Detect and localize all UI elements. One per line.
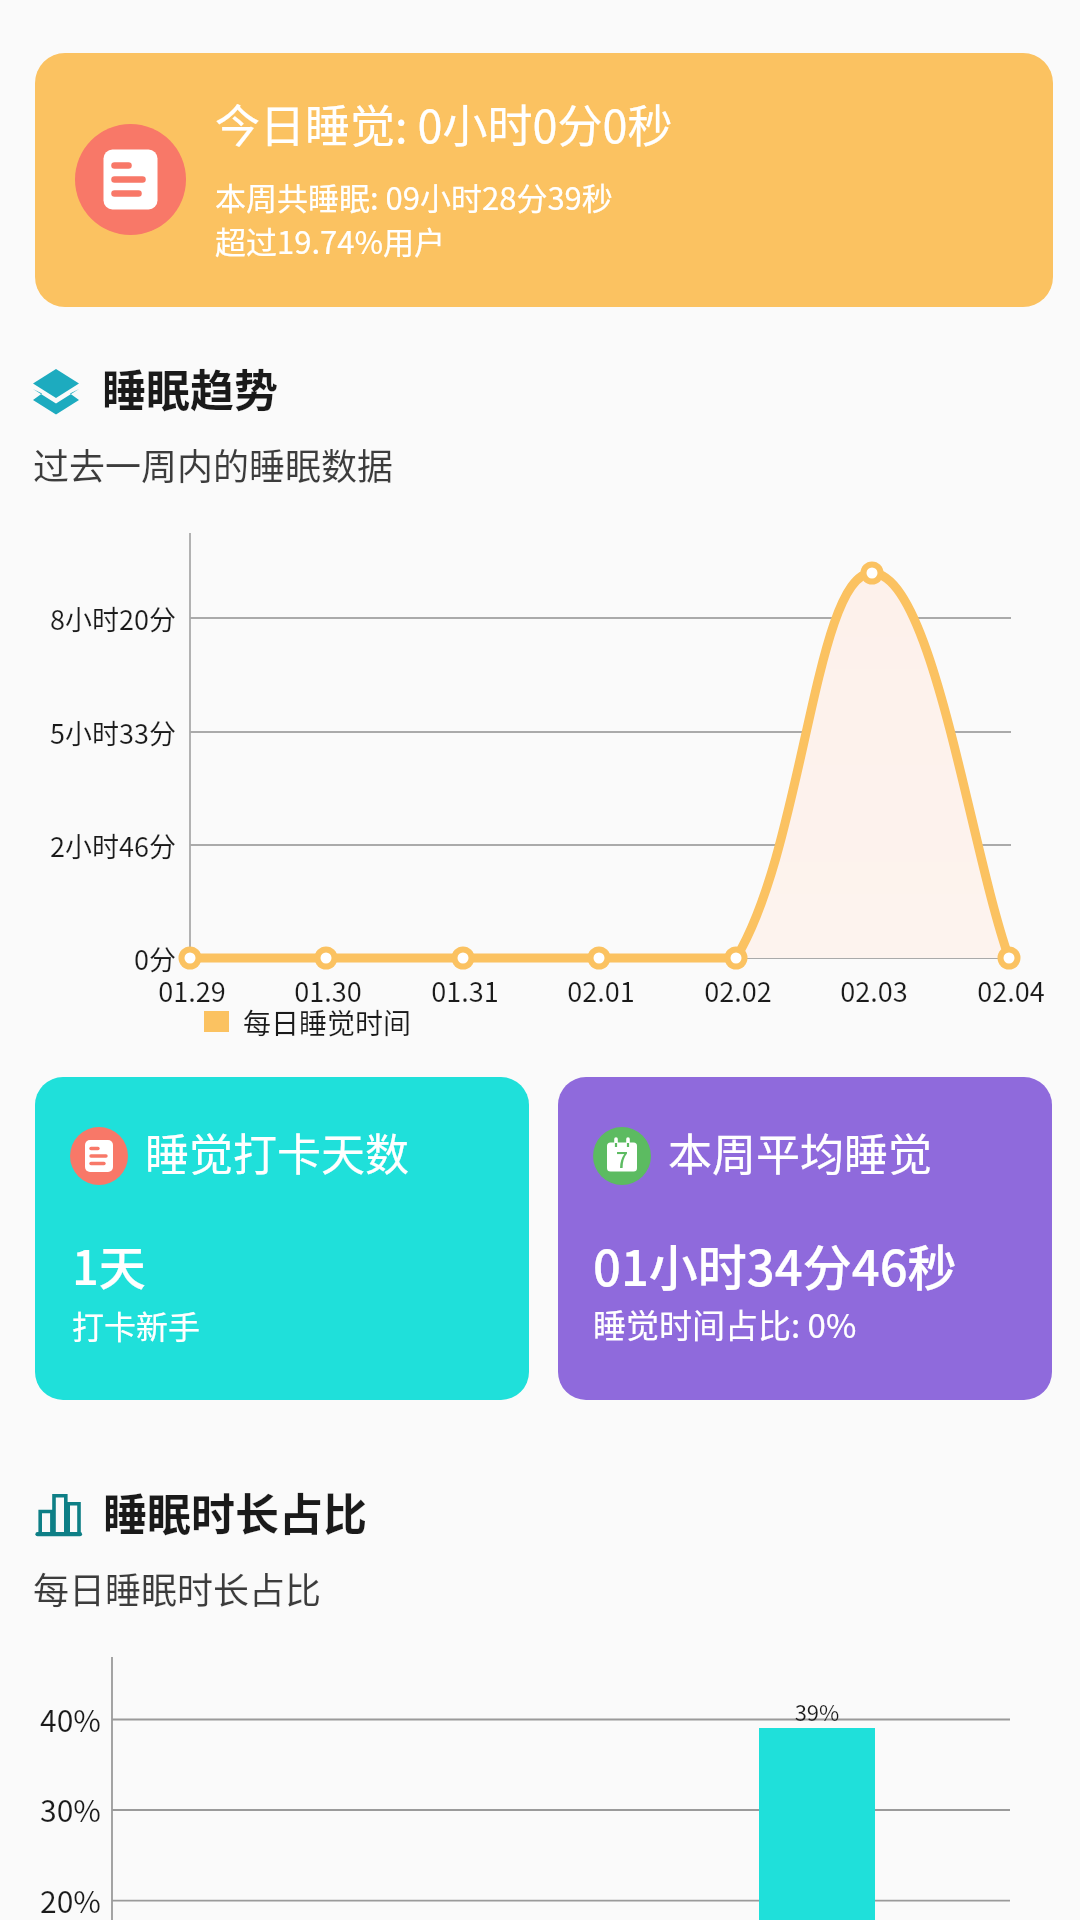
button[interactable]: 睡眠报告 bbox=[35, 53, 1053, 307]
staticText: 本周共睡眠: 09小时28分39秒 bbox=[215, 174, 613, 219]
other: 睡眠报告 bbox=[75, 124, 186, 235]
other: 本周 bbox=[593, 1127, 651, 1185]
staticText: 1天 bbox=[72, 1230, 146, 1298]
staticText: 02.04 bbox=[911, 971, 1080, 1010]
staticText: 过去一周内的睡眠数据 bbox=[33, 438, 394, 490]
other: 打卡 bbox=[70, 1127, 128, 1185]
staticText: 打卡新手 bbox=[72, 1302, 201, 1348]
button[interactable]: 本周 bbox=[558, 1077, 1052, 1400]
other: 睡眠趋势图层 bbox=[33, 369, 79, 415]
staticText: 8小时20分 bbox=[0, 599, 176, 638]
staticText: 睡觉打卡天数 bbox=[145, 1120, 409, 1184]
staticText: 7 bbox=[616, 1144, 628, 1174]
staticText: 39% bbox=[717, 1695, 917, 1727]
button[interactable]: 打卡 bbox=[35, 1077, 529, 1400]
staticText: 30% bbox=[0, 1787, 101, 1830]
staticText: 0分 bbox=[0, 939, 176, 978]
staticText: 02.01 bbox=[501, 971, 701, 1010]
other: 睡眠时长占比图表 bbox=[36, 1494, 80, 1536]
staticText: 每日睡觉时间 bbox=[243, 1002, 412, 1043]
staticText: 睡眠时长占比 bbox=[103, 1480, 367, 1544]
staticText: 2小时46分 bbox=[0, 826, 176, 865]
staticText: 02.02 bbox=[638, 971, 838, 1010]
staticText: 01.31 bbox=[365, 971, 565, 1010]
staticText: 40% bbox=[0, 1697, 101, 1740]
staticText: 20% bbox=[0, 1878, 101, 1920]
staticText: 01.29 bbox=[92, 971, 292, 1010]
staticText: 本周平均睡觉 bbox=[668, 1120, 932, 1184]
staticText: 01小时34分46秒 bbox=[593, 1229, 957, 1300]
staticText: 02.03 bbox=[774, 971, 974, 1010]
staticText: 睡觉时间占比: 0% bbox=[593, 1300, 857, 1348]
staticText: 超过19.74%用户 bbox=[215, 218, 445, 263]
staticText: 睡眠趋势 bbox=[102, 356, 278, 420]
staticText: 5小时33分 bbox=[0, 713, 176, 752]
staticText: 今日睡觉: 0小时0分0秒 bbox=[215, 91, 673, 156]
staticText: 01.30 bbox=[228, 971, 428, 1010]
staticText: 每日睡眠时长占比 bbox=[33, 1562, 322, 1614]
